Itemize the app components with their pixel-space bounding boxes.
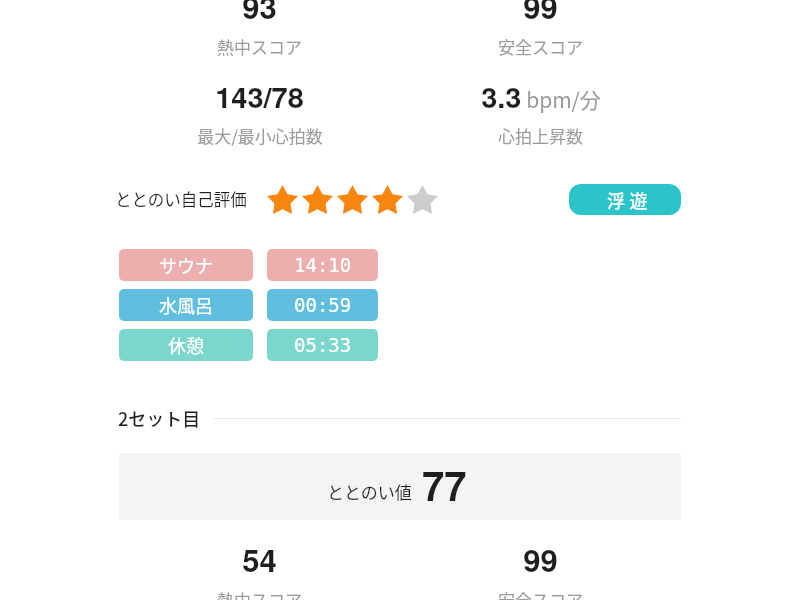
button[interactable]: 浮遊	[569, 184, 681, 215]
button[interactable]: 14:10	[267, 249, 378, 281]
staticText: 心拍上昇数	[498, 123, 583, 148]
button[interactable]: 00:59	[267, 289, 378, 321]
staticText: 93	[242, 0, 277, 28]
staticText: 14:10	[294, 254, 352, 276]
button[interactable]: Rating star 4	[370, 184, 405, 215]
staticText: 99	[523, 537, 558, 581]
button[interactable]: Rating star 1	[265, 184, 300, 215]
button[interactable]: Rating star 2	[300, 184, 335, 215]
button[interactable]: Rating star 5	[405, 184, 440, 215]
button[interactable]: 水風呂	[119, 289, 253, 321]
staticText: 水風呂	[159, 292, 213, 318]
staticText: ととのい自己評価	[115, 187, 247, 211]
staticText: 54	[242, 537, 277, 581]
staticText: 143/78	[215, 75, 304, 117]
staticText: 99	[523, 0, 558, 28]
staticText: 熱中スコア	[217, 587, 302, 600]
staticText: 2セット目	[118, 405, 201, 431]
staticText: 熱中スコア	[217, 34, 302, 59]
button[interactable]: ととのい値	[119, 453, 681, 520]
staticText: 浮遊	[607, 187, 652, 213]
staticText: サウナ	[159, 252, 213, 278]
button[interactable]: サウナ	[119, 249, 253, 281]
staticText: 3.3 bpm/分	[481, 75, 601, 117]
staticText: ととのい値	[327, 479, 412, 504]
staticText: 安全スコア	[498, 34, 583, 59]
staticText: 00:59	[294, 294, 352, 316]
staticText: 安全スコア	[498, 587, 583, 600]
staticText: 最大/最小心拍数	[197, 123, 323, 148]
staticText: 77	[422, 456, 467, 513]
staticText: 05:33	[294, 334, 352, 356]
button[interactable]: Rating star 3	[335, 184, 370, 215]
button[interactable]: 休憩	[119, 329, 253, 361]
button[interactable]: 05:33	[267, 329, 378, 361]
staticText: 休憩	[168, 332, 204, 358]
